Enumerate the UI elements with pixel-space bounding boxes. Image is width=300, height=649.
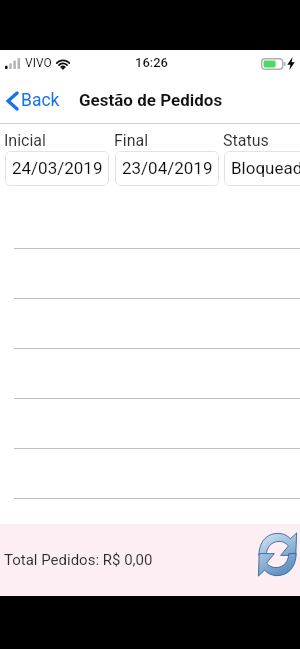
button[interactable] [0,449,300,499]
staticText: 24/03/2019 [12,158,103,178]
staticText: Inicial [4,131,46,150]
button[interactable] [0,249,300,299]
button[interactable]: 23/04/2019 [115,151,219,186]
button[interactable]: Back [0,85,68,116]
button[interactable] [0,349,300,399]
staticText: Status [223,131,269,150]
button[interactable]: 24/03/2019 [5,151,109,186]
button[interactable] [0,199,300,249]
staticText: Back [21,90,60,111]
button[interactable]: Refresh [257,531,297,577]
staticText: VIVO [25,56,52,70]
button[interactable] [0,299,300,349]
staticText: 16:26 [135,55,168,70]
staticText: Bloqueado [231,158,300,178]
staticText: Total Pedidos: R$ 0,00 [4,551,153,569]
button[interactable]: Bloqueado [224,151,300,186]
button[interactable] [0,399,300,449]
staticText: Final [114,131,149,150]
staticText: Gestão de Pedidos [79,90,223,110]
staticText: 23/04/2019 [122,158,213,178]
